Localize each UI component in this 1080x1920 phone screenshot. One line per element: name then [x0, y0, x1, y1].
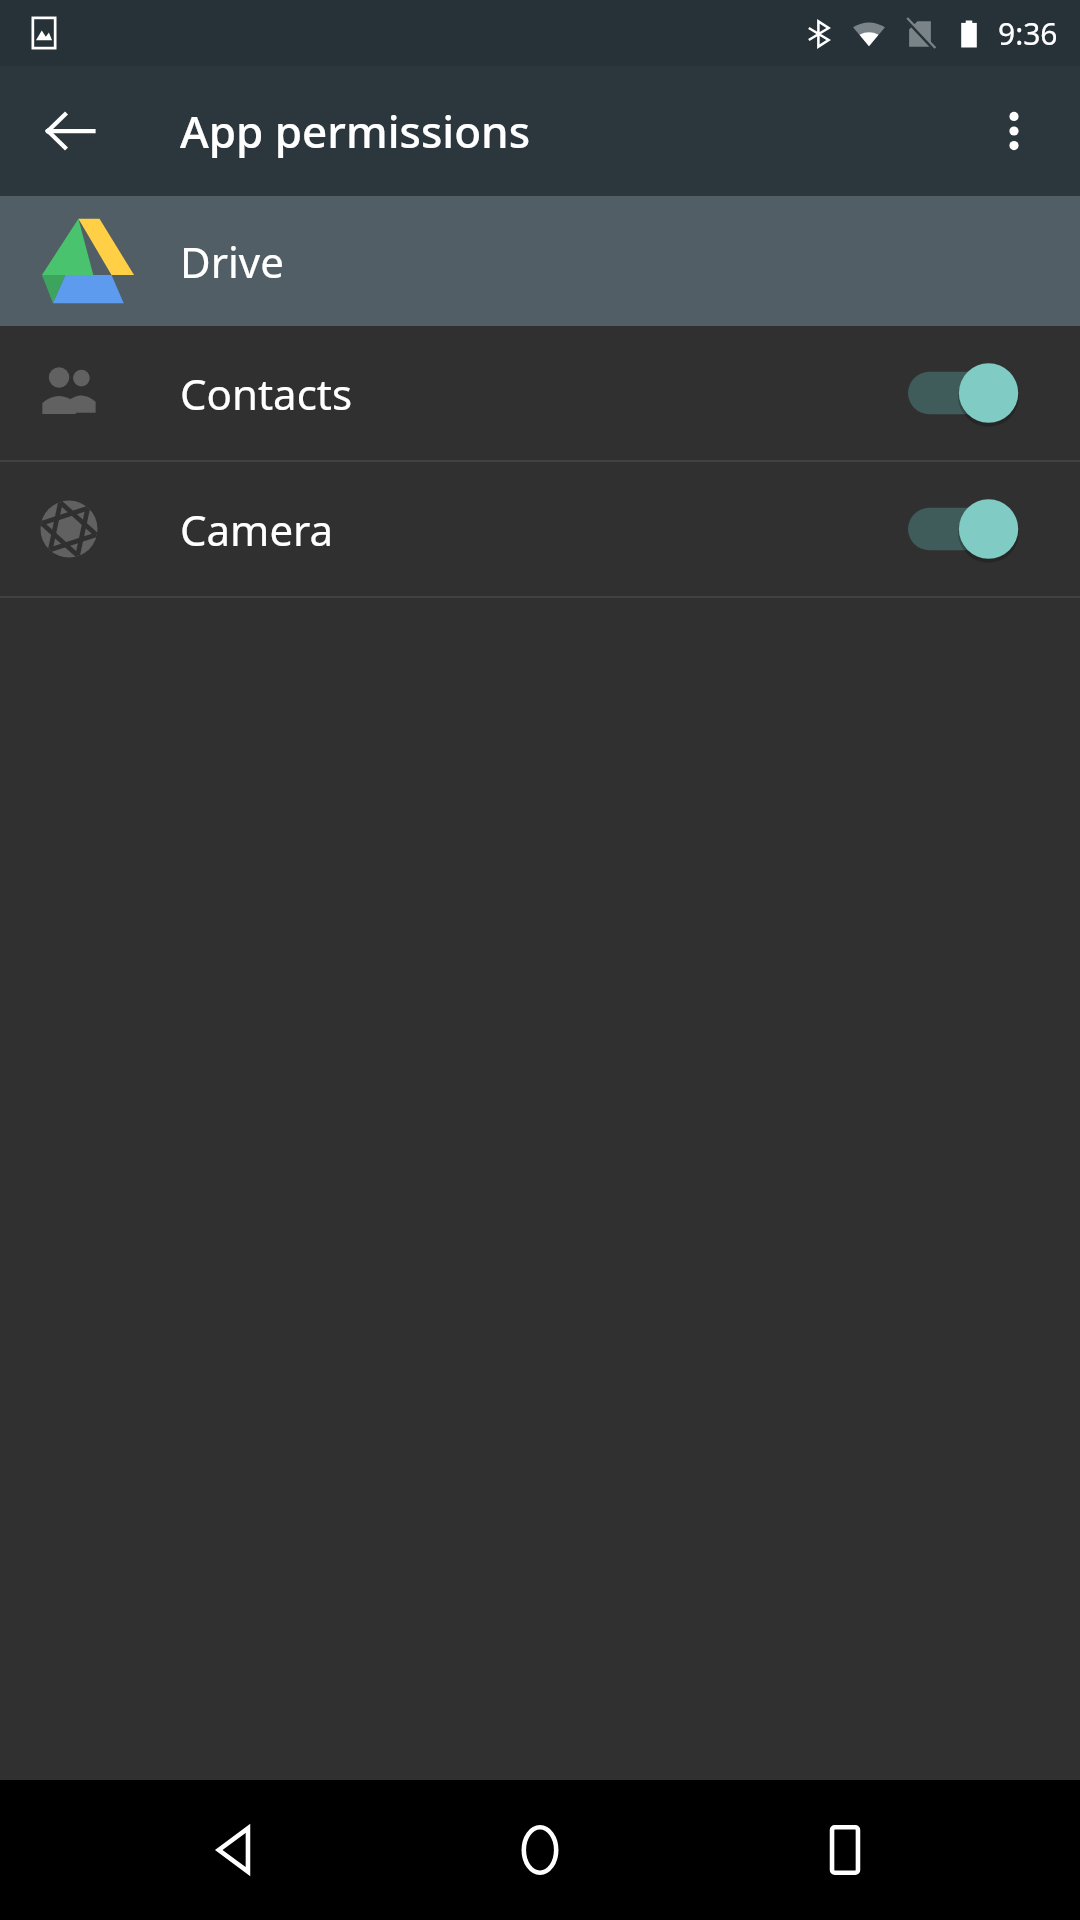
button[interactable]: Drive — [0, 196, 1080, 326]
button[interactable]: More options — [966, 83, 1062, 179]
button[interactable]: Recent apps — [775, 1780, 915, 1920]
button[interactable]: Back — [22, 83, 118, 179]
staticText: 9:36 — [998, 13, 1058, 54]
staticText: App permissions — [180, 101, 531, 161]
staticText: Drive — [180, 233, 284, 290]
button[interactable]: Contacts — [0, 326, 1080, 460]
button[interactable]: Permission toggle, on — [908, 484, 1028, 574]
staticText: Contacts — [180, 365, 353, 422]
button[interactable]: Camera — [0, 462, 1080, 596]
button[interactable]: Home — [470, 1780, 610, 1920]
button[interactable]: Permission toggle, on — [908, 348, 1028, 438]
staticText: Camera — [180, 501, 334, 558]
button[interactable]: Back — [165, 1780, 305, 1920]
